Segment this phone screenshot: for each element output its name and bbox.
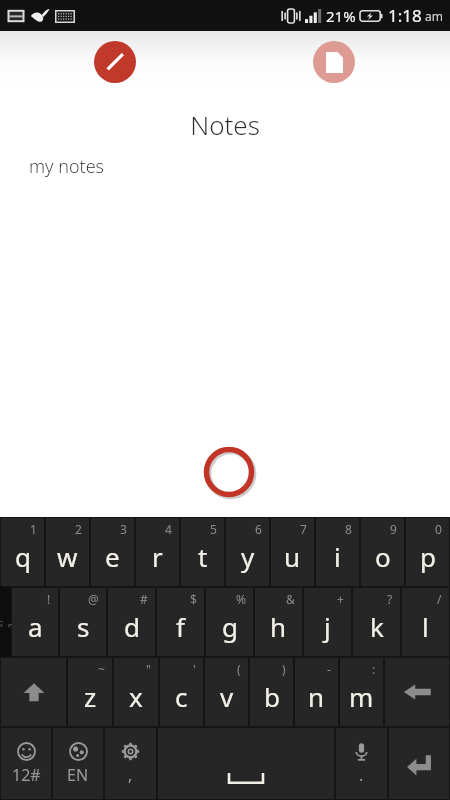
button[interactable]: $ <box>157 588 204 656</box>
staticText: 21% <box>326 6 356 26</box>
staticText: ' <box>193 661 196 677</box>
staticText: g <box>222 609 238 644</box>
staticText: c <box>175 679 188 714</box>
staticText: a <box>28 609 43 644</box>
staticText: k <box>370 609 384 644</box>
staticText: 12# <box>12 764 41 786</box>
staticText: my notes <box>29 154 105 179</box>
button[interactable]: : <box>340 658 383 726</box>
staticText: l <box>422 609 429 644</box>
staticText: 6 <box>255 521 262 537</box>
button[interactable]: ( <box>205 658 248 726</box>
staticText: Notes <box>190 107 260 142</box>
staticText: 1:18 <box>388 4 422 27</box>
staticText: 9 <box>390 521 397 537</box>
button[interactable]: ' <box>160 658 203 726</box>
staticText: t <box>198 539 208 574</box>
staticText: / <box>437 591 442 607</box>
staticText: 5 <box>210 521 217 537</box>
button[interactable]: 5 <box>181 518 224 586</box>
staticText: x <box>129 679 143 714</box>
button[interactable]: @ <box>60 588 106 656</box>
staticText: m <box>349 679 374 714</box>
staticText: r <box>152 539 163 574</box>
button[interactable]: , <box>105 728 156 799</box>
staticText: q <box>15 539 31 574</box>
staticText: am <box>425 8 443 24</box>
staticText: 0 <box>435 521 442 537</box>
button[interactable]: 6 <box>226 518 269 586</box>
button[interactable]: " <box>114 658 158 726</box>
staticText: 7 <box>300 521 307 537</box>
staticText: + <box>337 591 344 607</box>
staticText: 3 <box>120 521 127 537</box>
button[interactable]: # <box>108 588 155 656</box>
staticText: 4 <box>165 521 172 537</box>
staticText: v <box>220 679 234 714</box>
staticText: u <box>284 539 301 574</box>
button[interactable]: Backspace <box>385 658 449 726</box>
button[interactable]: Shift <box>1 658 66 726</box>
button[interactable]: ! <box>12 588 58 656</box>
staticText: % <box>236 591 246 607</box>
staticText: y <box>241 539 255 574</box>
button[interactable]: ? <box>353 588 400 656</box>
staticText: p <box>420 539 436 574</box>
button[interactable]: & <box>255 588 302 656</box>
staticText: f <box>176 609 185 644</box>
button[interactable]: ~ <box>68 658 112 726</box>
staticText: . <box>359 764 364 786</box>
staticText: EN <box>67 764 89 786</box>
staticText: z <box>84 679 97 714</box>
button[interactable]: Space <box>158 728 334 799</box>
staticText: : <box>372 661 376 677</box>
staticText: d <box>124 609 140 644</box>
staticText: ~ <box>98 661 105 677</box>
staticText: ( <box>237 661 241 677</box>
staticText: 8 <box>345 521 352 537</box>
staticText: o <box>375 539 391 574</box>
staticText: ? <box>387 591 393 607</box>
staticText: $ <box>190 591 197 607</box>
button[interactable]: - <box>295 658 338 726</box>
button[interactable]: . <box>336 728 387 799</box>
staticText: @ <box>88 591 99 607</box>
button[interactable]: % <box>206 588 253 656</box>
staticText: b <box>264 679 280 714</box>
button[interactable]: 0 <box>406 518 449 586</box>
staticText: 2 <box>75 521 82 537</box>
staticText: ) <box>282 661 286 677</box>
button[interactable]: EN <box>53 728 103 799</box>
button[interactable]: Enter <box>389 728 449 799</box>
button[interactable]: 8 <box>316 518 359 586</box>
button[interactable]: 12# <box>1 728 51 799</box>
staticText: w <box>57 539 78 574</box>
staticText: s <box>77 609 90 644</box>
staticText: # <box>140 591 148 607</box>
staticText: i <box>334 539 341 574</box>
staticText: n <box>308 679 325 714</box>
staticText: - <box>327 661 331 677</box>
button[interactable]: Edit note <box>94 41 136 83</box>
staticText: e <box>105 539 120 574</box>
button[interactable]: 1 <box>1 518 44 586</box>
staticText: j <box>324 609 331 644</box>
button[interactable]: 4 <box>136 518 179 586</box>
button[interactable]: 3 <box>91 518 134 586</box>
staticText: ! <box>47 591 51 607</box>
staticText: XT9 <box>0 616 15 627</box>
staticText: , <box>128 764 133 786</box>
button[interactable]: Record <box>202 445 256 499</box>
staticText: 1 <box>30 521 37 537</box>
button[interactable]: ) <box>250 658 293 726</box>
staticText: & <box>286 591 295 607</box>
button[interactable]: 7 <box>271 518 314 586</box>
button[interactable]: + <box>304 588 351 656</box>
button[interactable]: 9 <box>361 518 404 586</box>
button[interactable]: / <box>402 588 449 656</box>
button[interactable]: New note <box>313 41 355 83</box>
staticText: " <box>146 661 151 677</box>
staticText: h <box>270 609 287 644</box>
button[interactable]: 2 <box>46 518 89 586</box>
button[interactable]: my notes <box>0 148 450 184</box>
